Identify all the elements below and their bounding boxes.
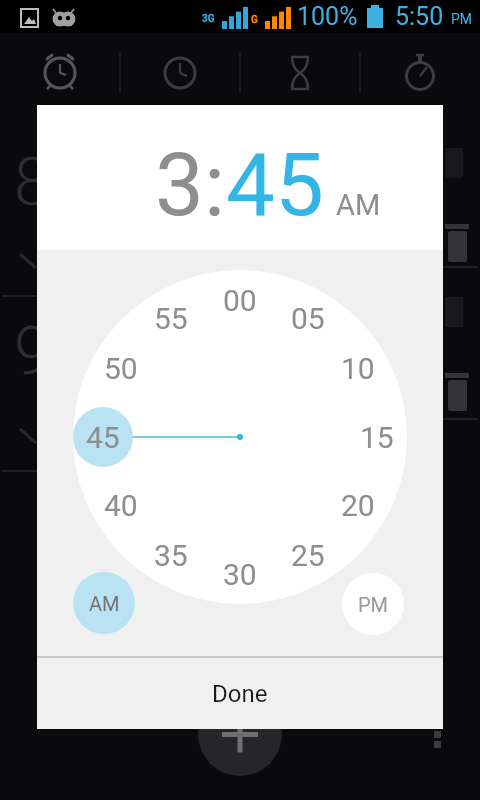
staticText: Done (212, 680, 268, 708)
button[interactable]: AM (73, 572, 135, 634)
staticText: 50 (104, 351, 138, 386)
staticText: AM (89, 592, 120, 615)
staticText: 55 (154, 301, 188, 336)
staticText: 9 (14, 313, 51, 387)
staticText: 5:50 (395, 2, 444, 31)
staticText: 00 (223, 283, 257, 318)
staticText: : (204, 134, 226, 236)
staticText: 15 (360, 420, 394, 455)
staticText: 40 (104, 488, 138, 523)
staticText: 20 (341, 488, 375, 523)
staticText: 35 (154, 538, 188, 573)
staticText: 3G (202, 13, 215, 25)
staticText: 100% (297, 2, 358, 31)
staticText: PM (451, 11, 473, 27)
button[interactable]: PM (342, 573, 404, 635)
staticText: 8 (14, 144, 51, 218)
staticText: 30 (223, 557, 257, 592)
button[interactable]: Done (37, 658, 443, 729)
staticText: G (251, 14, 258, 26)
staticText: AM (336, 188, 381, 222)
staticText: 3 (155, 134, 204, 236)
staticText: 10 (341, 351, 375, 386)
staticText: 45 (86, 420, 120, 455)
staticText: 45 (226, 134, 324, 236)
staticText: 05 (291, 301, 325, 336)
staticText: PM (358, 593, 389, 616)
staticText: 25 (291, 538, 325, 573)
